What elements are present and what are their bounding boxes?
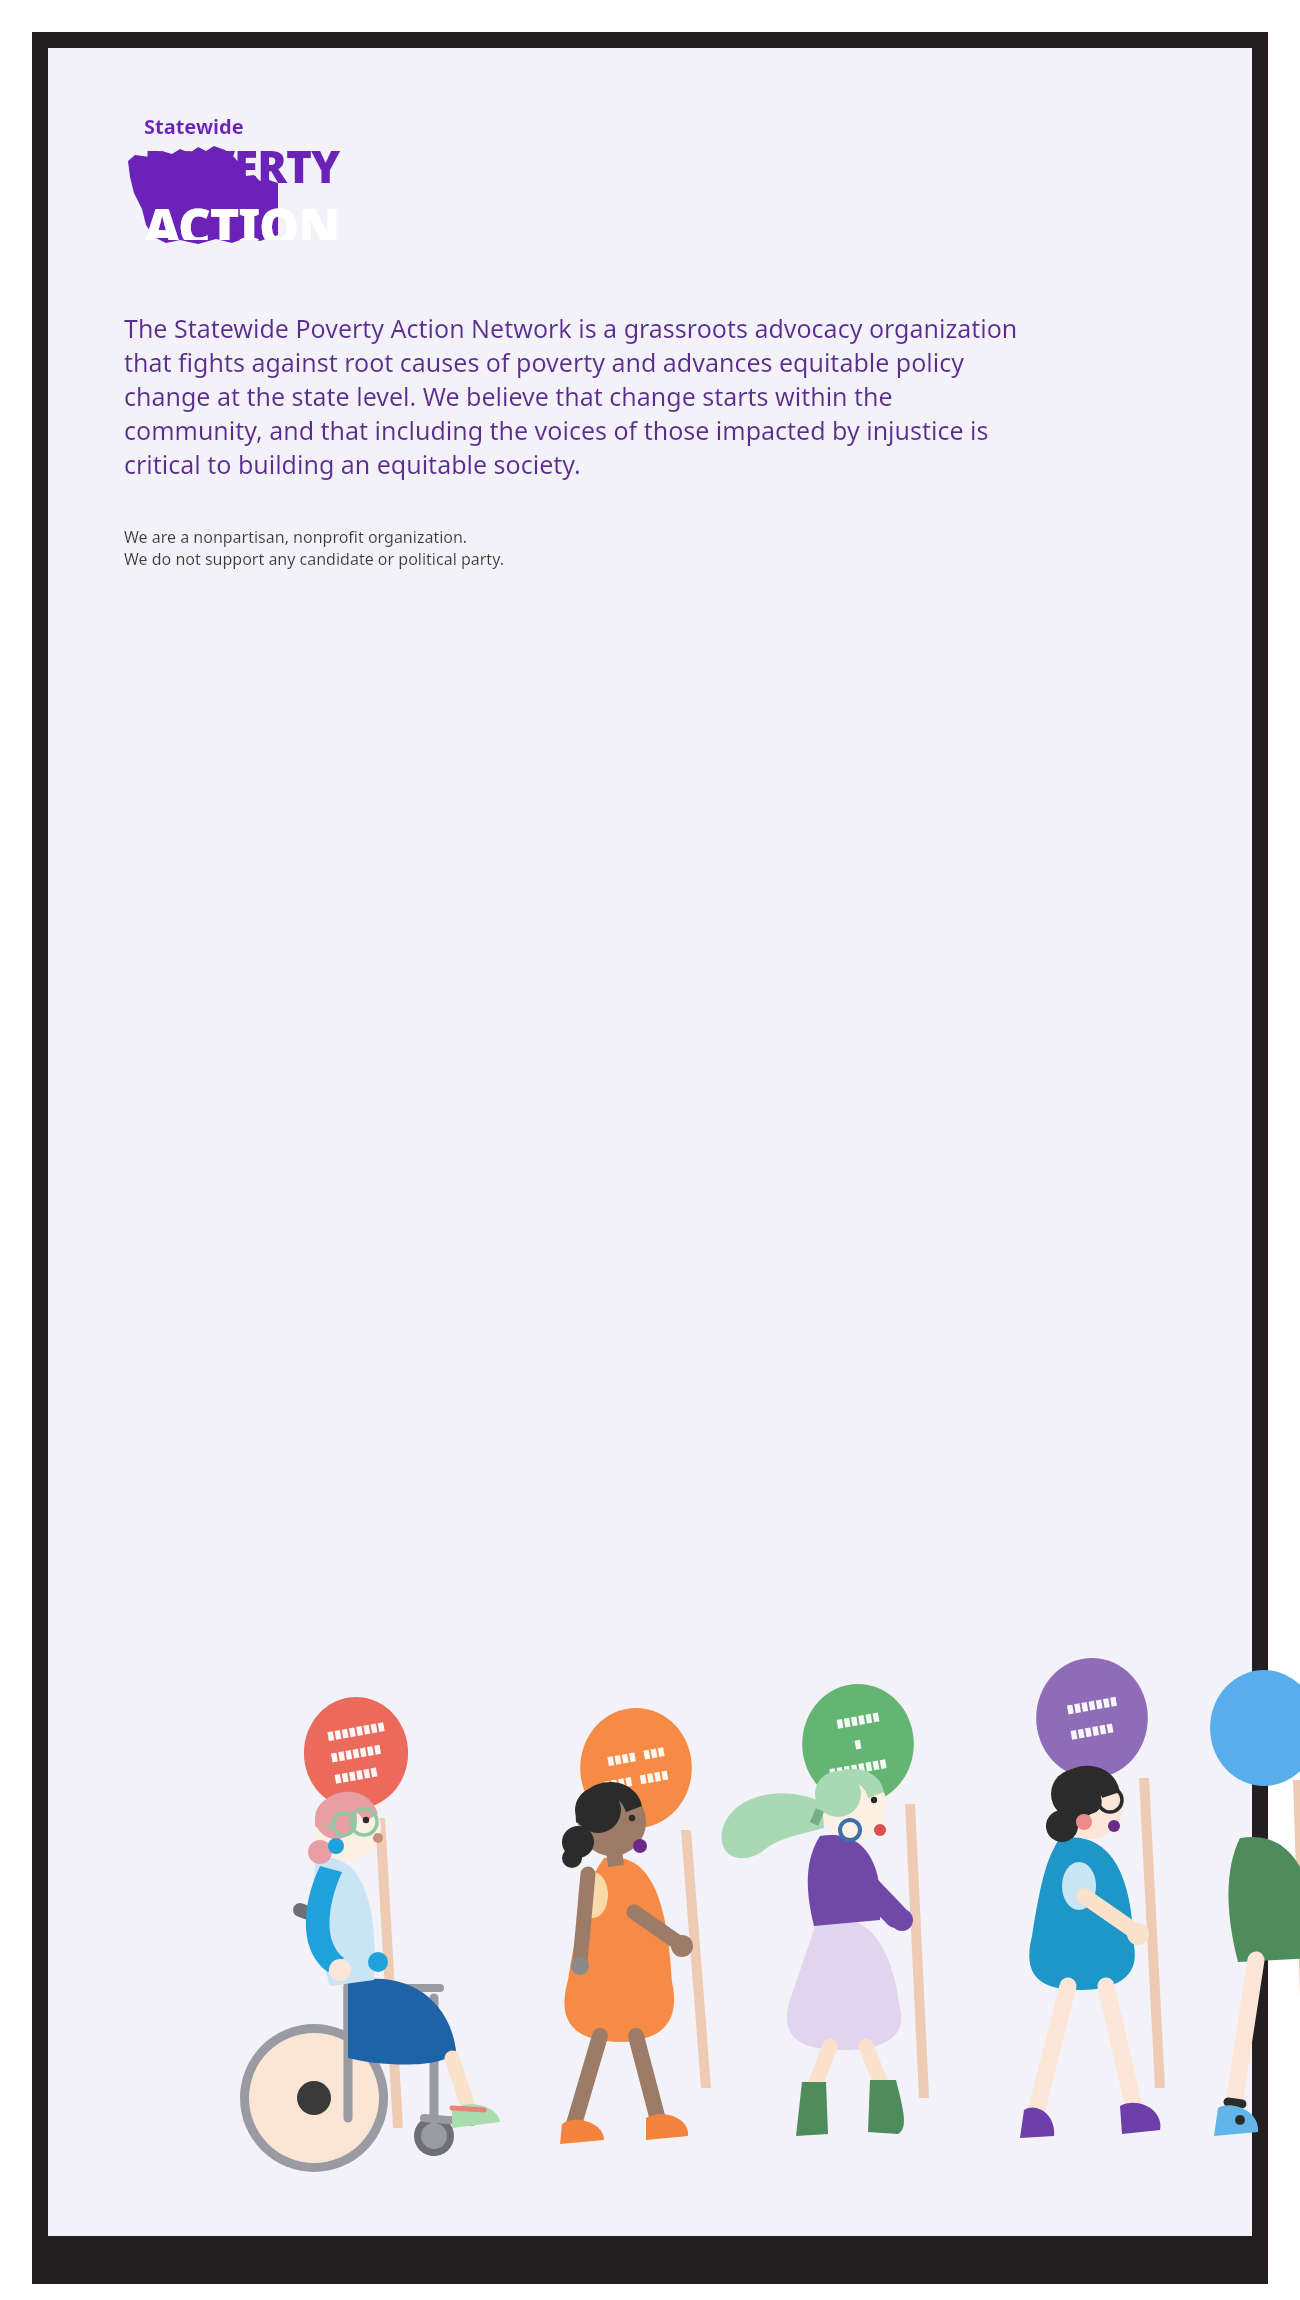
staticText: The Statewide Poverty Action Network is … [124, 311, 1024, 481]
button[interactable]: The Statewide Poverty Action Network is … [124, 311, 1024, 481]
button[interactable]: We are a nonpartisan, nonprofit organiza… [124, 526, 504, 570]
button[interactable]: Statewide Poverty Action Network logo [128, 113, 348, 248]
button[interactable]: Statewide Poverty Action Network logo [48, 48, 1252, 2236]
other: Illustration of people marching with pro… [48, 1568, 1252, 2188]
staticText: We are a nonpartisan, nonprofit organiza… [124, 526, 468, 548]
staticText: ACTION [144, 192, 339, 240]
staticText: POVERTY [144, 136, 340, 196]
staticText: Statewide [144, 113, 244, 140]
staticText: We do not support any candidate or polit… [124, 548, 504, 570]
